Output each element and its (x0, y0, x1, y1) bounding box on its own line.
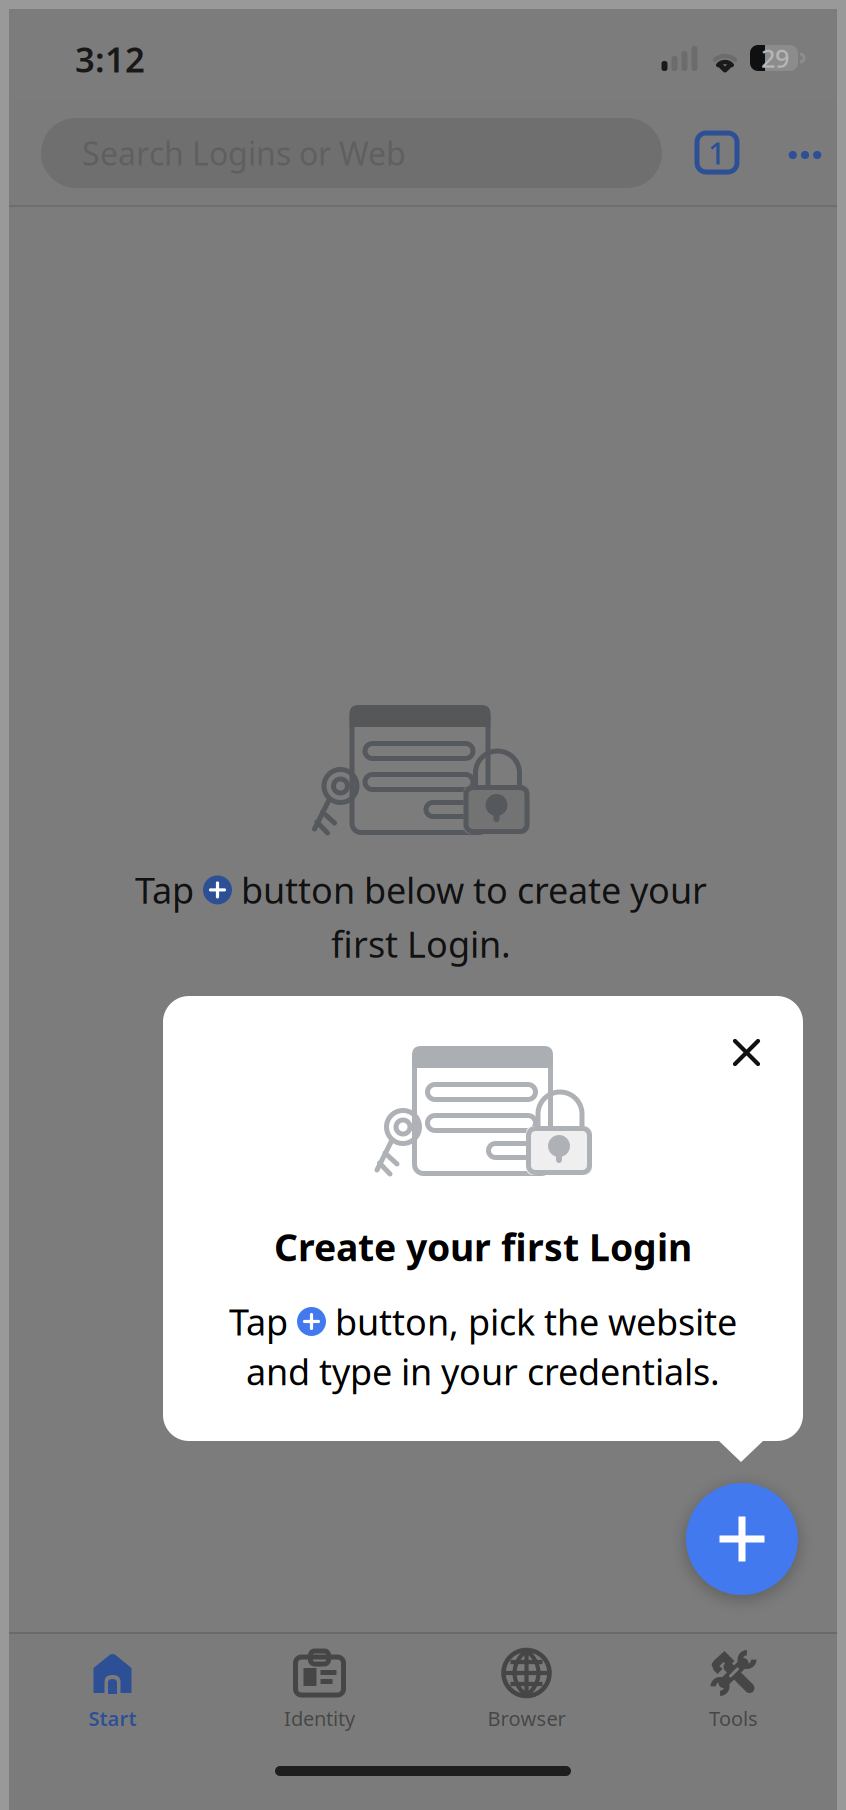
button[interactable]: Add login (686, 1483, 798, 1595)
button[interactable]: More (772, 125, 838, 185)
staticText: button below to create your (232, 866, 707, 914)
staticText: Tools (709, 1705, 758, 1732)
staticText: Tap (229, 1298, 297, 1345)
staticText: 3:12 (75, 36, 145, 82)
button[interactable]: Tools (630, 1648, 837, 1753)
staticText: 29 (761, 41, 789, 75)
staticText: and type in your credentials. (246, 1347, 720, 1395)
button[interactable]: Close (715, 1021, 778, 1084)
button[interactable]: Start (9, 1648, 216, 1753)
staticText: Start (88, 1705, 136, 1732)
staticText: 1 (708, 132, 726, 173)
staticText: first Login. (331, 920, 511, 968)
staticText: button, pick the website (326, 1298, 737, 1345)
staticText: Identity (284, 1705, 355, 1732)
staticText: Browser (487, 1705, 565, 1732)
staticText: Tap (135, 866, 203, 914)
button[interactable]: Identity (216, 1648, 423, 1753)
button[interactable]: Search Logins or Web (41, 118, 662, 188)
staticText: Create your first Login (274, 1222, 692, 1272)
button[interactable]: Tabs, 1 open (681, 117, 753, 188)
button[interactable]: Browser (423, 1648, 630, 1753)
staticText: Search Logins or Web (82, 132, 406, 174)
